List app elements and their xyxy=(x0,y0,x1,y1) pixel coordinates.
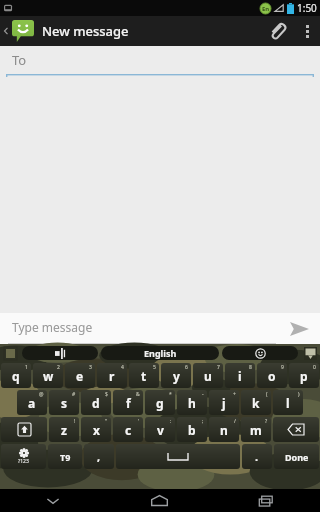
staticText: New message xyxy=(42,22,129,40)
staticText: y xyxy=(173,368,180,384)
button[interactable]: q xyxy=(1,363,31,388)
button[interactable]: y xyxy=(161,363,191,388)
button[interactable]: More options xyxy=(294,16,320,46)
staticText: Type message xyxy=(12,319,93,335)
button[interactable] xyxy=(273,417,319,442)
button[interactable]: j xyxy=(209,390,239,415)
button[interactable]: Home xyxy=(106,489,213,512)
staticText: e xyxy=(76,368,84,384)
staticText: ! xyxy=(74,418,76,425)
button[interactable]: , xyxy=(84,444,114,469)
staticText: z xyxy=(61,422,67,438)
staticText: 9 xyxy=(281,364,284,371)
staticText: / xyxy=(234,418,236,425)
staticText: d xyxy=(92,395,100,411)
button[interactable]: w xyxy=(33,363,63,388)
staticText: $ xyxy=(105,391,108,398)
staticText: 0 xyxy=(313,364,316,371)
button[interactable]: u xyxy=(193,363,223,388)
button[interactable]: m xyxy=(241,417,271,442)
staticText: f xyxy=(126,395,131,411)
button[interactable]: o xyxy=(257,363,287,388)
button[interactable]: a xyxy=(17,390,47,415)
staticText: 5 xyxy=(153,364,156,371)
staticText: v xyxy=(157,422,164,438)
staticText: r xyxy=(109,368,115,384)
staticText: English xyxy=(144,347,177,359)
button[interactable]: d xyxy=(81,390,111,415)
staticText: To xyxy=(12,51,27,69)
button[interactable]: c xyxy=(113,417,143,442)
button[interactable]: p xyxy=(289,363,319,388)
staticText: 2 xyxy=(57,364,60,371)
button[interactable]: z xyxy=(49,417,79,442)
button[interactable] xyxy=(222,346,298,360)
button[interactable]: . xyxy=(242,444,272,469)
staticText: u xyxy=(204,368,212,384)
button[interactable]: s xyxy=(49,390,79,415)
staticText: 6 xyxy=(185,364,188,371)
button[interactable] xyxy=(22,346,98,360)
staticText: ?123 xyxy=(18,458,29,465)
button[interactable]: Send xyxy=(278,313,320,344)
button[interactable]: ?123 xyxy=(1,444,46,469)
staticText: 8 xyxy=(249,364,252,371)
staticText: g xyxy=(156,395,164,411)
button[interactable]: Recent apps xyxy=(213,489,320,512)
staticText: 4 xyxy=(121,364,124,371)
button[interactable]: Theme xyxy=(2,345,18,361)
button[interactable]: Navigate up xyxy=(0,16,38,46)
button[interactable]: To xyxy=(0,46,320,77)
staticText: 1:50 xyxy=(297,1,317,15)
button[interactable]: t xyxy=(129,363,159,388)
button[interactable]: r xyxy=(97,363,127,388)
staticText: : xyxy=(170,418,172,425)
staticText: " xyxy=(105,418,108,425)
button[interactable]: g xyxy=(145,390,175,415)
button[interactable]: b xyxy=(177,417,207,442)
staticText: q xyxy=(12,368,20,384)
button[interactable] xyxy=(1,417,47,442)
button[interactable]: i xyxy=(225,363,255,388)
staticText: & xyxy=(136,391,140,398)
staticText: n xyxy=(220,422,228,438)
button[interactable]: Hide keyboard xyxy=(302,345,318,361)
staticText: ' xyxy=(138,418,140,425)
button[interactable]: k xyxy=(241,390,271,415)
staticText: . xyxy=(255,449,259,464)
staticText: ? xyxy=(265,418,268,425)
button[interactable] xyxy=(116,444,240,469)
button[interactable]: Type message xyxy=(0,313,278,344)
staticText: * xyxy=(169,391,172,398)
staticText: , xyxy=(97,449,101,464)
button[interactable]: Attach xyxy=(260,16,294,46)
staticText: 3 xyxy=(89,364,92,371)
button[interactable]: x xyxy=(81,417,111,442)
staticText: a xyxy=(28,395,36,411)
staticText: # xyxy=(72,391,76,398)
staticText: k xyxy=(252,395,260,411)
staticText: j xyxy=(222,395,226,411)
staticText: ( xyxy=(266,391,268,398)
staticText: + xyxy=(233,391,236,398)
button[interactable]: l xyxy=(273,390,303,415)
button[interactable]: e xyxy=(65,363,95,388)
staticText: t xyxy=(141,368,147,384)
button[interactable]: Back xyxy=(0,489,106,512)
button[interactable]: h xyxy=(177,390,207,415)
staticText: i xyxy=(238,368,242,384)
button[interactable]: English xyxy=(101,346,219,360)
staticText: o xyxy=(268,368,276,384)
button[interactable]: Done xyxy=(274,444,319,469)
staticText: 7 xyxy=(217,364,220,371)
staticText: @ xyxy=(39,391,44,398)
button[interactable]: f xyxy=(113,390,143,415)
staticText: x xyxy=(93,422,100,438)
button[interactable]: T9 xyxy=(48,444,82,469)
staticText: m xyxy=(250,422,262,438)
staticText: 1 xyxy=(25,364,28,371)
staticText: Done xyxy=(285,451,309,463)
button[interactable]: n xyxy=(209,417,239,442)
staticText: T9 xyxy=(60,451,71,463)
button[interactable]: v xyxy=(145,417,175,442)
